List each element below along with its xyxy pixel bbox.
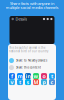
staticText: national bird of our country <box>9 49 48 53</box>
staticText: t <box>51 72 53 80</box>
staticText: Details <box>15 16 27 22</box>
staticText: Share to Nearby Devices <box>16 59 47 62</box>
staticText: s <box>26 78 29 86</box>
staticText: This beautiful animal is the <box>9 46 46 49</box>
staticText: c <box>50 78 53 86</box>
staticText: Share this content <box>16 66 41 69</box>
staticText: m <box>17 72 22 80</box>
staticText: multiple social media channels <box>5 5 58 10</box>
staticText: Share facts with anyone in <box>10 1 54 6</box>
staticText: v <box>10 78 13 86</box>
staticText: w <box>33 72 38 80</box>
staticText: p <box>42 78 45 86</box>
staticText: f <box>11 72 13 80</box>
staticText: in <box>25 72 30 80</box>
staticText: t <box>19 78 21 86</box>
staticText: M <box>33 78 38 86</box>
staticText: o <box>42 72 45 80</box>
